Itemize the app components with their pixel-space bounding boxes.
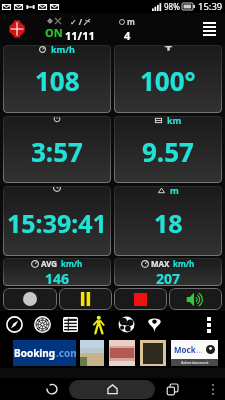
button[interactable]: Back <box>38 378 66 400</box>
staticText: ✓ / <box>70 16 83 27</box>
button[interactable]: 15:39:41 <box>3 186 111 256</box>
staticText: km/h <box>61 258 83 269</box>
staticText: Mock <box>174 344 196 355</box>
button[interactable]: km/h <box>3 45 111 113</box>
staticText: Booking <box>14 346 56 360</box>
button[interactable]: km <box>114 116 222 183</box>
staticText: km/h <box>173 258 195 269</box>
staticText: 9.57 <box>142 134 194 169</box>
button[interactable]: More options <box>193 311 225 338</box>
staticText: .com <box>56 346 76 360</box>
button[interactable]: List <box>56 311 84 338</box>
staticText: ... <box>196 344 203 355</box>
button[interactable]: Location <box>140 311 168 338</box>
staticText: 3:57 <box>31 134 83 169</box>
staticText: 4 <box>124 28 131 43</box>
button[interactable]: MAX <box>114 258 222 286</box>
staticText: 146 <box>45 269 70 286</box>
button[interactable]: Options <box>201 378 225 400</box>
button[interactable]: Map <box>112 311 140 338</box>
button[interactable]: Stop <box>114 288 167 310</box>
button[interactable]: Recents <box>158 378 186 400</box>
staticText: 15:39:41 <box>7 206 107 240</box>
staticText: m <box>170 186 179 196</box>
staticText: AVG <box>41 258 58 269</box>
staticText: m <box>127 16 135 27</box>
button[interactable]: Home <box>98 378 126 400</box>
button[interactable]: AVG <box>3 258 111 286</box>
staticText: MAX <box>151 258 170 269</box>
staticText: 100° <box>140 63 196 98</box>
button[interactable]: 100° <box>114 45 222 113</box>
staticText: 18 <box>154 206 183 240</box>
staticText: km/h <box>51 45 75 55</box>
button[interactable]: Sound <box>169 288 222 310</box>
staticText: ON <box>45 25 63 40</box>
staticText: 11/11 <box>65 28 95 43</box>
staticText: 207 <box>156 269 181 286</box>
button[interactable]: Activity <box>84 311 112 338</box>
staticText: km <box>167 116 182 126</box>
button[interactable]: 3:57 <box>3 116 111 183</box>
staticText: 98% <box>164 1 180 12</box>
staticText: 15:39 <box>198 0 223 13</box>
button[interactable]: Pause <box>59 288 112 310</box>
button[interactable]: m <box>114 186 222 256</box>
staticText: Advertisement <box>181 360 209 365</box>
button[interactable]: Menu <box>194 13 225 45</box>
button[interactable]: Record <box>3 288 57 310</box>
button[interactable]: Compass <box>0 311 28 338</box>
staticText: 108 <box>35 63 80 98</box>
button[interactable]: Satellites <box>28 311 56 338</box>
